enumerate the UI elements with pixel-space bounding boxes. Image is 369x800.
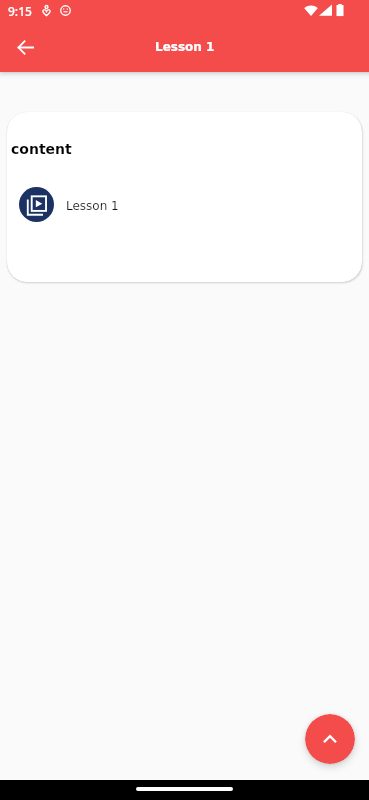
staticText: content (11, 141, 72, 157)
staticText: Lesson 1 (155, 40, 215, 54)
button[interactable]: Lesson 1 (7, 185, 362, 223)
staticText: 9:15 (8, 3, 32, 19)
button[interactable]: Scroll to top (305, 714, 355, 764)
staticText: Lesson 1 (66, 199, 119, 213)
button[interactable]: Back (9, 31, 41, 63)
